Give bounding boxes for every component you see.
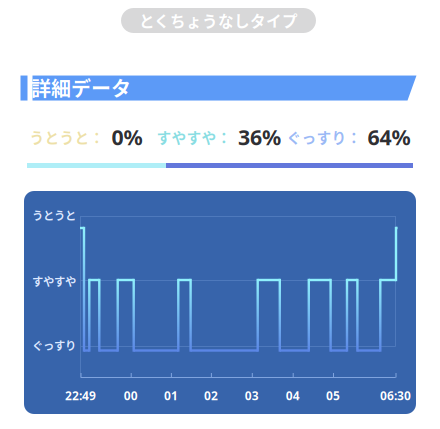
staticText: とくちょうなしタイプ xyxy=(139,9,298,32)
staticText: 06:30 xyxy=(380,387,411,403)
staticText: 22:49 xyxy=(65,387,96,403)
staticText: 00 xyxy=(124,387,138,403)
staticText: うとうと： xyxy=(29,126,104,148)
staticText: 02 xyxy=(204,387,218,403)
staticText: 04 xyxy=(286,387,300,403)
button[interactable]: とくちょうなしタイプ xyxy=(121,8,316,33)
staticText: うとうと xyxy=(32,207,76,223)
staticText: ぐっすり： xyxy=(286,126,361,148)
staticText: 0% xyxy=(111,123,142,151)
staticText: ぐっすり xyxy=(32,337,76,353)
staticText: 詳細データ xyxy=(31,73,131,102)
staticText: 03 xyxy=(245,387,259,403)
staticText: すやすや xyxy=(32,273,76,289)
staticText: 05 xyxy=(326,387,340,403)
staticText: すやすや： xyxy=(156,126,231,148)
staticText: 36% xyxy=(238,123,281,151)
staticText: 64% xyxy=(367,123,410,151)
staticText: 01 xyxy=(164,387,178,403)
